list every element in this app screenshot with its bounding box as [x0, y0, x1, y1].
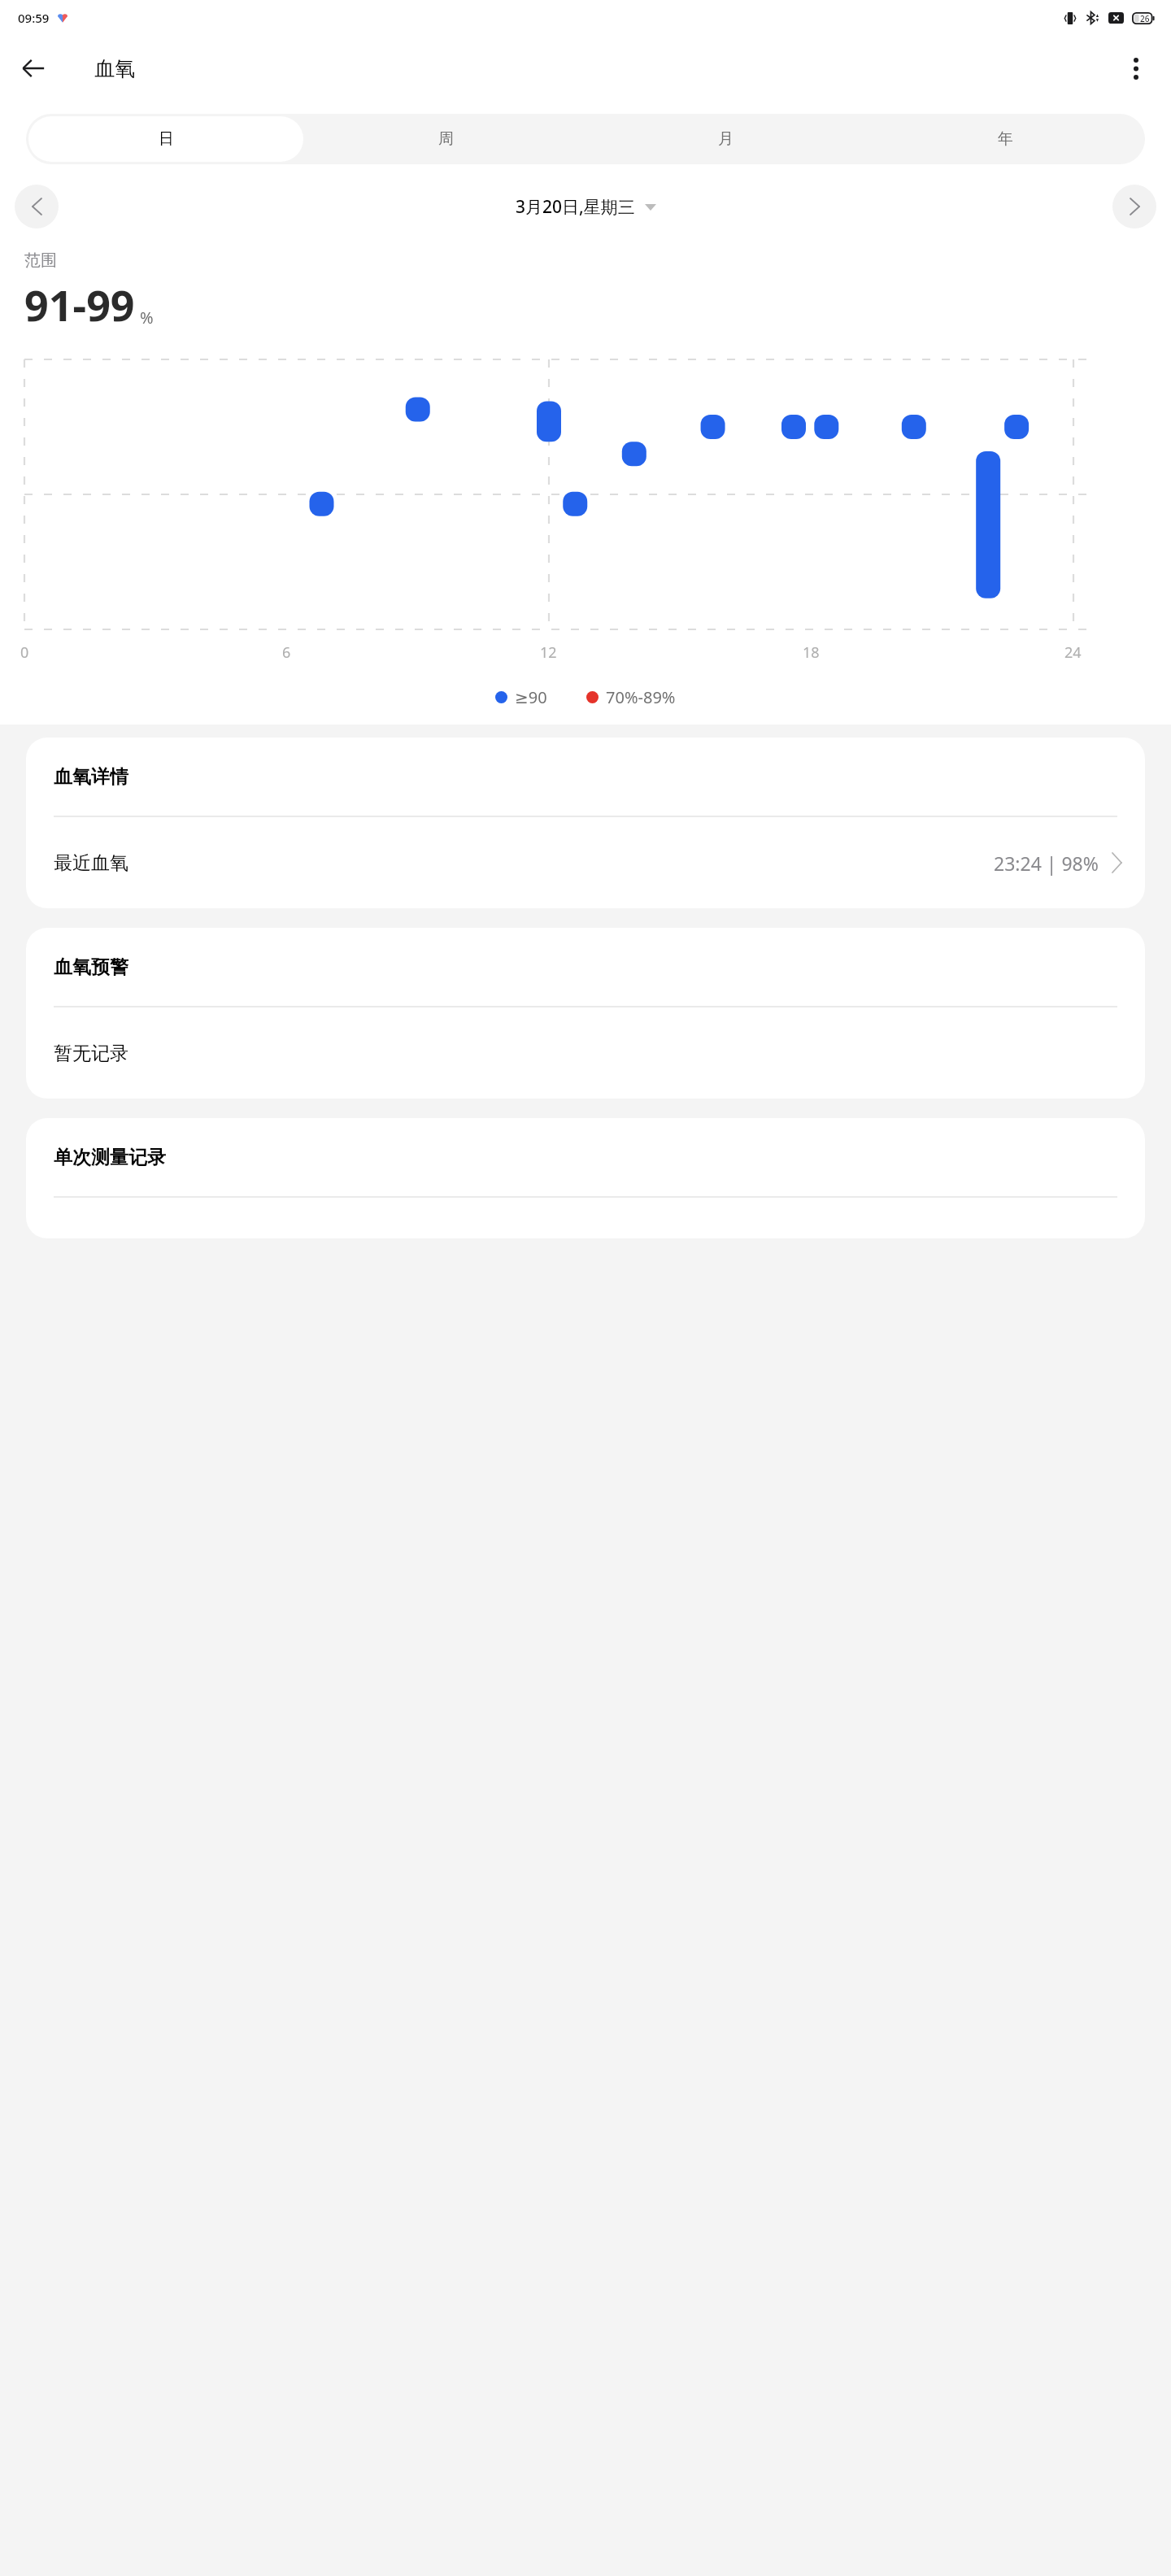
staticText: 70%-89% [606, 686, 676, 708]
staticText: ≥90 [515, 686, 547, 708]
staticText: 3月20日,星期三 [516, 195, 635, 219]
button[interactable]: Back [10, 45, 57, 92]
staticText: 日 [159, 129, 174, 149]
staticText: 血氧预警 [54, 955, 128, 979]
staticText: 23:24 | 98% [994, 851, 1099, 876]
staticText: 6 [282, 642, 291, 663]
staticText: 血氧详情 [54, 765, 128, 789]
staticText: 暂无记录 [54, 1042, 128, 1065]
staticText: 最近血氧 [54, 851, 128, 875]
staticText: 血氧 [94, 56, 135, 81]
staticText: 12 [540, 642, 557, 663]
button[interactable]: 3月20日,星期三 [516, 195, 656, 219]
staticText: 范围 [24, 250, 57, 271]
button[interactable]: 月 [588, 116, 863, 162]
button[interactable]: Next day [1112, 185, 1156, 228]
staticText: 18 [803, 642, 820, 663]
staticText: 年 [998, 129, 1013, 149]
staticText: 91-99 [24, 276, 135, 333]
button[interactable]: 年 [868, 116, 1143, 162]
button[interactable]: 最近血氧 [26, 817, 1145, 908]
staticText: 0 [20, 642, 29, 663]
button[interactable]: Previous day [15, 185, 59, 228]
staticText: 周 [438, 129, 454, 149]
button[interactable]: More options [1112, 45, 1160, 92]
staticText: 单次测量记录 [54, 1146, 166, 1169]
staticText: 月 [718, 129, 734, 149]
staticText: 26 [1140, 13, 1150, 24]
staticText: 09:59 [18, 10, 50, 26]
button[interactable]: 日 [28, 116, 303, 162]
staticText: 24 [1064, 642, 1082, 663]
staticText: % [140, 307, 154, 329]
button[interactable]: 周 [308, 116, 583, 162]
